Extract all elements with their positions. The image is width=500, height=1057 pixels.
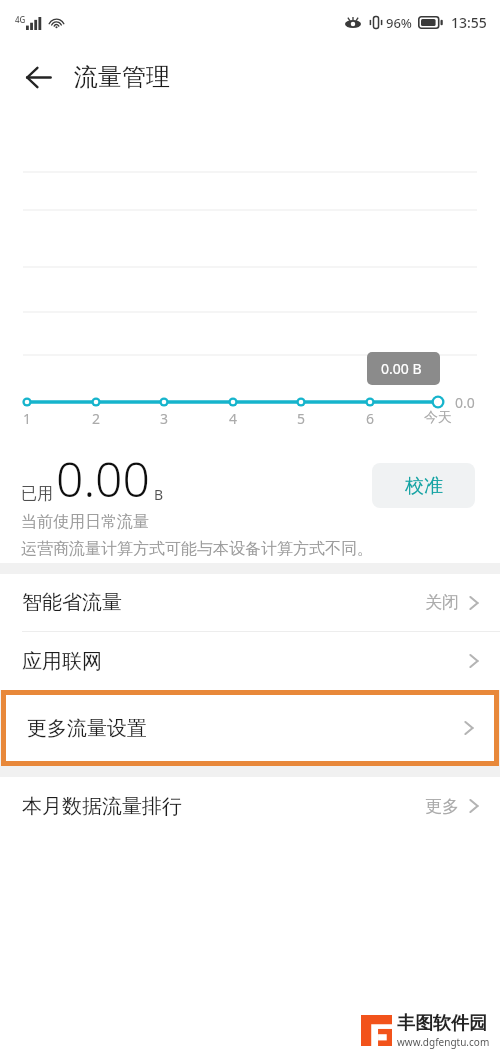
staticText: www.dgfengtu.com <box>397 1035 490 1049</box>
staticText: 关闭 <box>425 592 459 613</box>
staticText: 2 <box>92 409 101 428</box>
staticText: 智能省流量 <box>22 590 122 615</box>
staticText: 本月数据流量排行 <box>22 794 182 819</box>
staticText: 更多流量设置 <box>27 716 147 741</box>
staticText: 4 <box>229 409 238 428</box>
staticText: 1 <box>23 409 32 428</box>
staticText: 校准 <box>405 474 443 498</box>
staticText: 6 <box>366 409 375 428</box>
button[interactable]: 智能省流量 <box>0 574 500 632</box>
staticText: 4G <box>15 14 26 25</box>
button[interactable]: Back <box>12 51 64 103</box>
staticText: 今天 <box>424 409 452 427</box>
staticText: 0.00 B <box>381 359 422 378</box>
staticText: 96% <box>386 14 412 32</box>
staticText: 3 <box>160 409 169 428</box>
staticText: 应用联网 <box>22 649 102 674</box>
staticText: 流量管理 <box>74 62 170 92</box>
staticText: 当前使用日常流量 <box>21 512 149 532</box>
staticText: 13:55 <box>451 13 487 32</box>
staticText: 更多 <box>425 796 459 817</box>
staticText: 丰图软件园 <box>397 1012 487 1035</box>
button[interactable]: 校准 <box>372 463 475 508</box>
staticText: 已用 <box>21 484 53 504</box>
staticText: 5 <box>297 409 306 428</box>
button[interactable]: 本月数据流量排行 <box>0 777 500 835</box>
button[interactable]: 更多流量设置 <box>6 695 494 761</box>
staticText: B <box>154 485 164 504</box>
staticText: 0.0 <box>455 393 475 412</box>
staticText: 0.00 <box>56 446 150 511</box>
button[interactable]: 应用联网 <box>0 632 500 690</box>
staticText: 运营商流量计算方式可能与本设备计算方式不同。 <box>21 539 373 559</box>
